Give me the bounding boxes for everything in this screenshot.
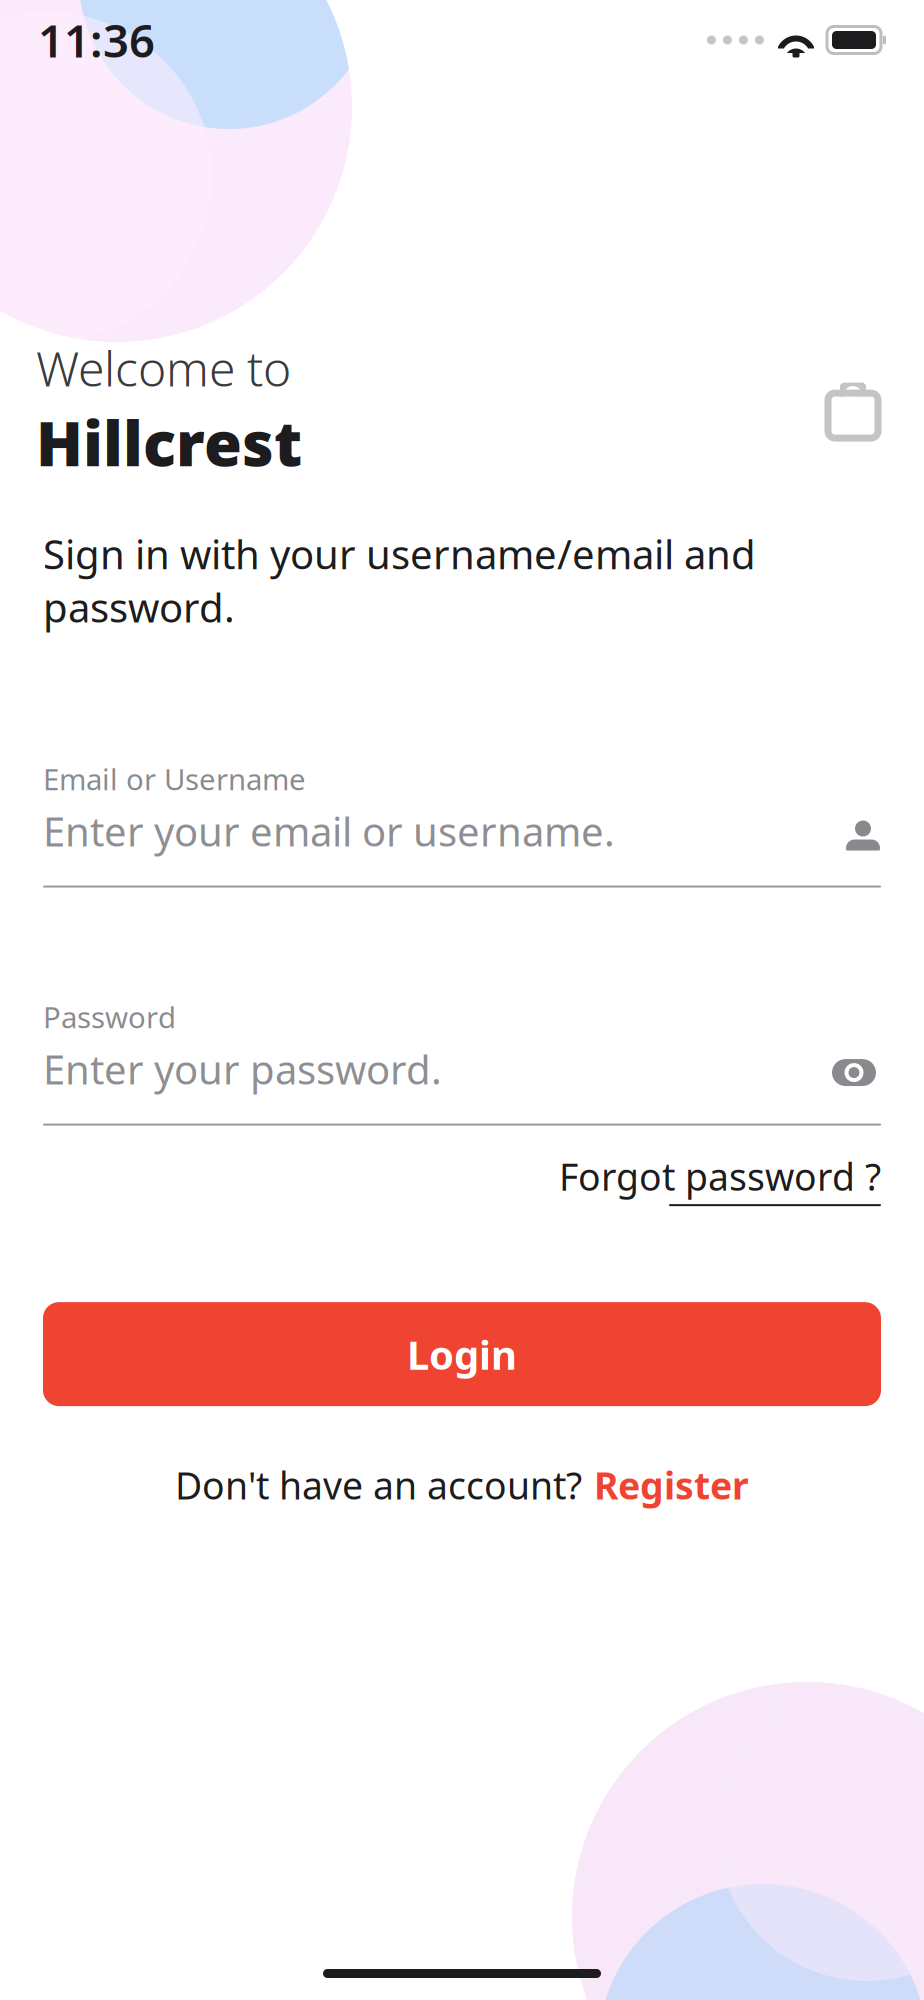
staticText: Enter your email or username. <box>43 804 615 857</box>
staticText: Don't have an account? <box>175 1460 582 1510</box>
staticText: Forgot password ? <box>559 1152 881 1201</box>
staticText: Email or Username <box>43 759 306 798</box>
staticText: Hillcrest <box>36 402 302 483</box>
staticText: Register <box>594 1460 749 1510</box>
button[interactable]: Forgot password ? <box>559 1152 881 1206</box>
staticText: Sign in with your username/email and pas… <box>43 527 756 633</box>
button[interactable]: Register <box>594 1460 749 1510</box>
button[interactable]: Login <box>43 1302 881 1406</box>
staticText: Password <box>43 997 176 1036</box>
staticText: Enter your password. <box>43 1042 442 1096</box>
button[interactable]: Password <box>43 997 881 1126</box>
button[interactable]: Shop <box>818 371 888 449</box>
button[interactable]: Show password <box>827 1054 881 1092</box>
staticText: 11:36 <box>38 10 155 70</box>
staticText: Login <box>407 1328 517 1381</box>
button[interactable]: Email or Username <box>43 759 881 887</box>
staticText: Welcome to <box>36 336 291 400</box>
